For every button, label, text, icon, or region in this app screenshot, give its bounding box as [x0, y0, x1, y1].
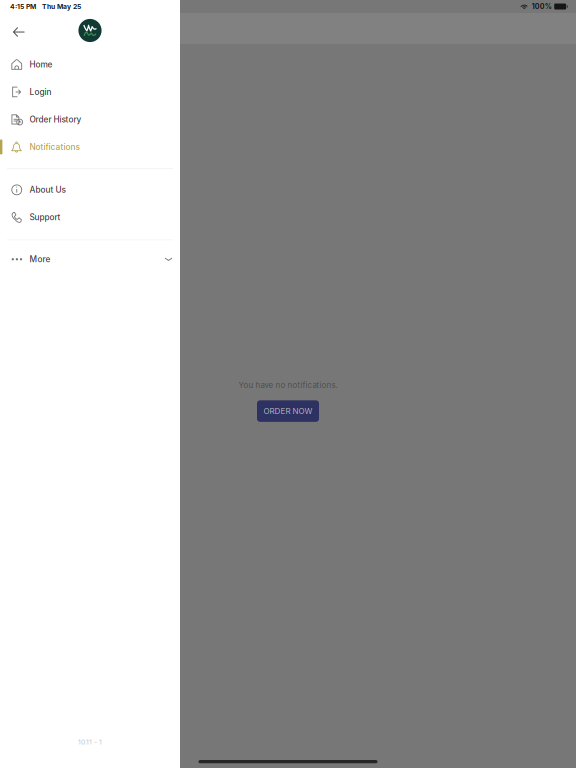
staticText: Order History	[29, 114, 81, 124]
staticText: About Us	[29, 185, 65, 195]
staticText: ORDER NOW	[263, 406, 312, 416]
button[interactable]: Order History	[0, 106, 180, 133]
staticText: Support	[29, 212, 60, 222]
staticText: Login	[29, 87, 51, 97]
button[interactable]: About Us	[0, 176, 180, 204]
button[interactable]: ORDER NOW	[257, 400, 319, 422]
staticText: Home	[29, 59, 52, 69]
button[interactable]: Back	[0, 13, 35, 48]
button[interactable]: Support	[0, 204, 180, 231]
staticText: 4:15 PM Thu May 25	[10, 2, 81, 11]
staticText: Notifications	[29, 142, 79, 152]
staticText: You have no notifications.	[238, 380, 337, 390]
staticText: 100%	[532, 2, 552, 11]
button[interactable]: Login	[0, 78, 180, 106]
staticText: More	[29, 254, 50, 264]
button[interactable]: Home	[0, 51, 180, 78]
button[interactable]: More	[0, 245, 180, 273]
staticText: 10.11 - 1	[78, 738, 102, 746]
button[interactable]: Notifications	[0, 133, 180, 161]
